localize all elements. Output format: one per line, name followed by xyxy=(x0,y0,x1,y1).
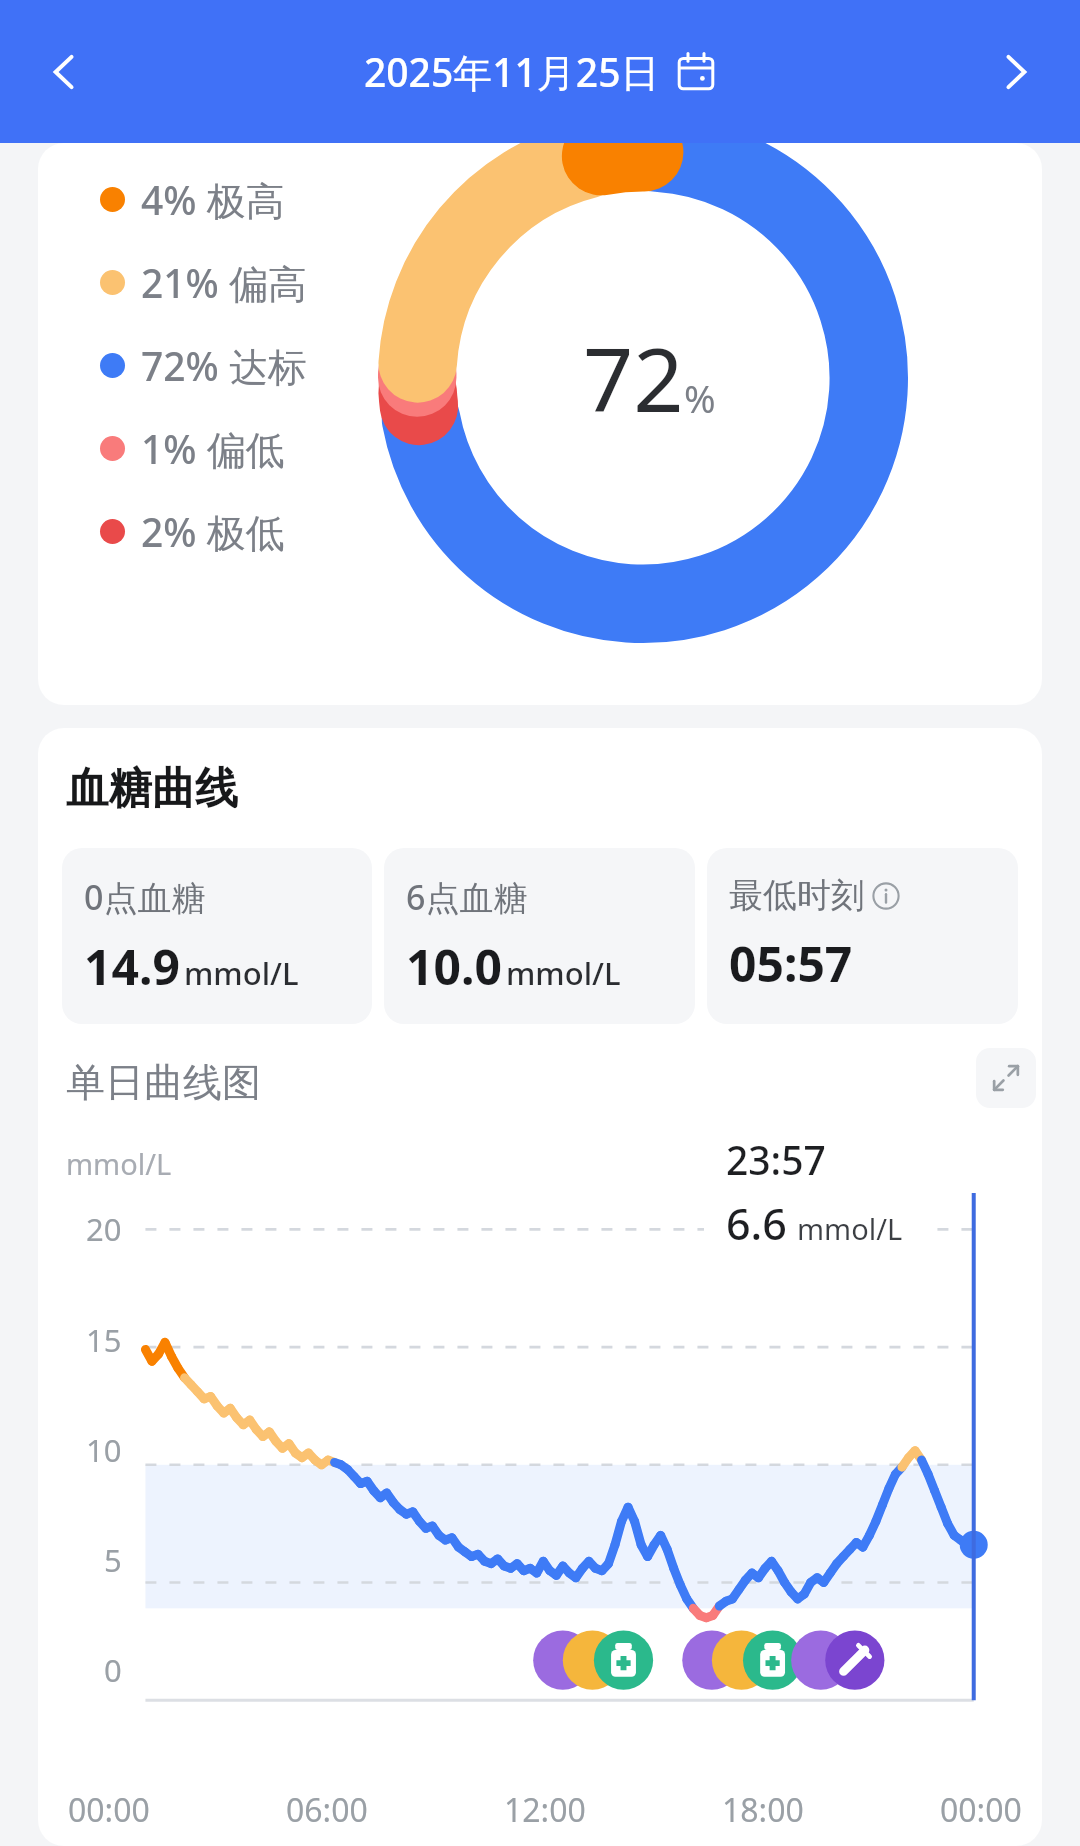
staticText: 4% 极高 xyxy=(141,173,285,226)
button[interactable]: Next day xyxy=(974,30,1058,114)
button[interactable]: 4% 极高 xyxy=(38,143,1042,705)
staticText: 18:00 xyxy=(722,1788,804,1832)
button[interactable]: 2025年11月25日 xyxy=(364,45,716,98)
staticText: mmol/L xyxy=(66,1144,172,1183)
staticText: 单日曲线图 xyxy=(66,1058,261,1107)
staticText: 00:00 xyxy=(68,1788,150,1832)
button[interactable]: Previous day xyxy=(22,30,106,114)
staticText: 最低时刻 xyxy=(729,874,865,917)
staticText: 72% 达标 xyxy=(141,339,307,392)
staticText: 05:57 xyxy=(729,931,853,996)
staticText: 10.0 xyxy=(406,934,502,999)
button[interactable]: 72% 达标 xyxy=(100,339,307,392)
staticText: 00:00 xyxy=(940,1788,1022,1832)
button[interactable]: 1% 偏低 xyxy=(100,422,285,475)
staticText: 0点血糖 xyxy=(84,874,206,920)
staticText: 14.9 xyxy=(84,934,180,999)
staticText: mmol/L xyxy=(797,1209,903,1248)
staticText: 6.6 xyxy=(726,1194,787,1253)
staticText: 2% 极低 xyxy=(141,505,285,558)
staticText: 5 xyxy=(104,1539,122,1581)
button[interactable]: 6点血糖 xyxy=(384,848,695,1024)
button[interactable]: Expand chart xyxy=(976,1048,1036,1108)
staticText: 06:00 xyxy=(286,1788,368,1832)
button[interactable]: 最低时刻 xyxy=(707,848,1018,1024)
staticText: 1% 偏低 xyxy=(141,422,285,475)
staticText: 20 xyxy=(86,1208,122,1250)
button[interactable]: 2% 极低 xyxy=(100,505,285,558)
staticText: 72 xyxy=(583,318,684,438)
staticText: 12:00 xyxy=(504,1788,586,1832)
staticText: 6点血糖 xyxy=(406,874,528,920)
staticText: 21% 偏高 xyxy=(141,256,307,309)
staticText: % xyxy=(684,372,716,424)
staticText: 2025年11月25日 xyxy=(364,45,660,98)
button[interactable]: 4% 极高 xyxy=(100,173,285,226)
staticText: 10 xyxy=(86,1429,122,1471)
staticText: 血糖曲线 xyxy=(66,762,238,816)
staticText: mmol/L xyxy=(184,952,299,994)
button[interactable]: 0点血糖 xyxy=(62,848,372,1024)
button[interactable]: 23:57 xyxy=(704,1117,934,1269)
staticText: 0 xyxy=(104,1649,122,1691)
button[interactable]: 21% 偏高 xyxy=(100,256,307,309)
staticText: 23:57 xyxy=(726,1133,826,1186)
staticText: mmol/L xyxy=(506,952,621,994)
staticText: 15 xyxy=(86,1319,122,1361)
